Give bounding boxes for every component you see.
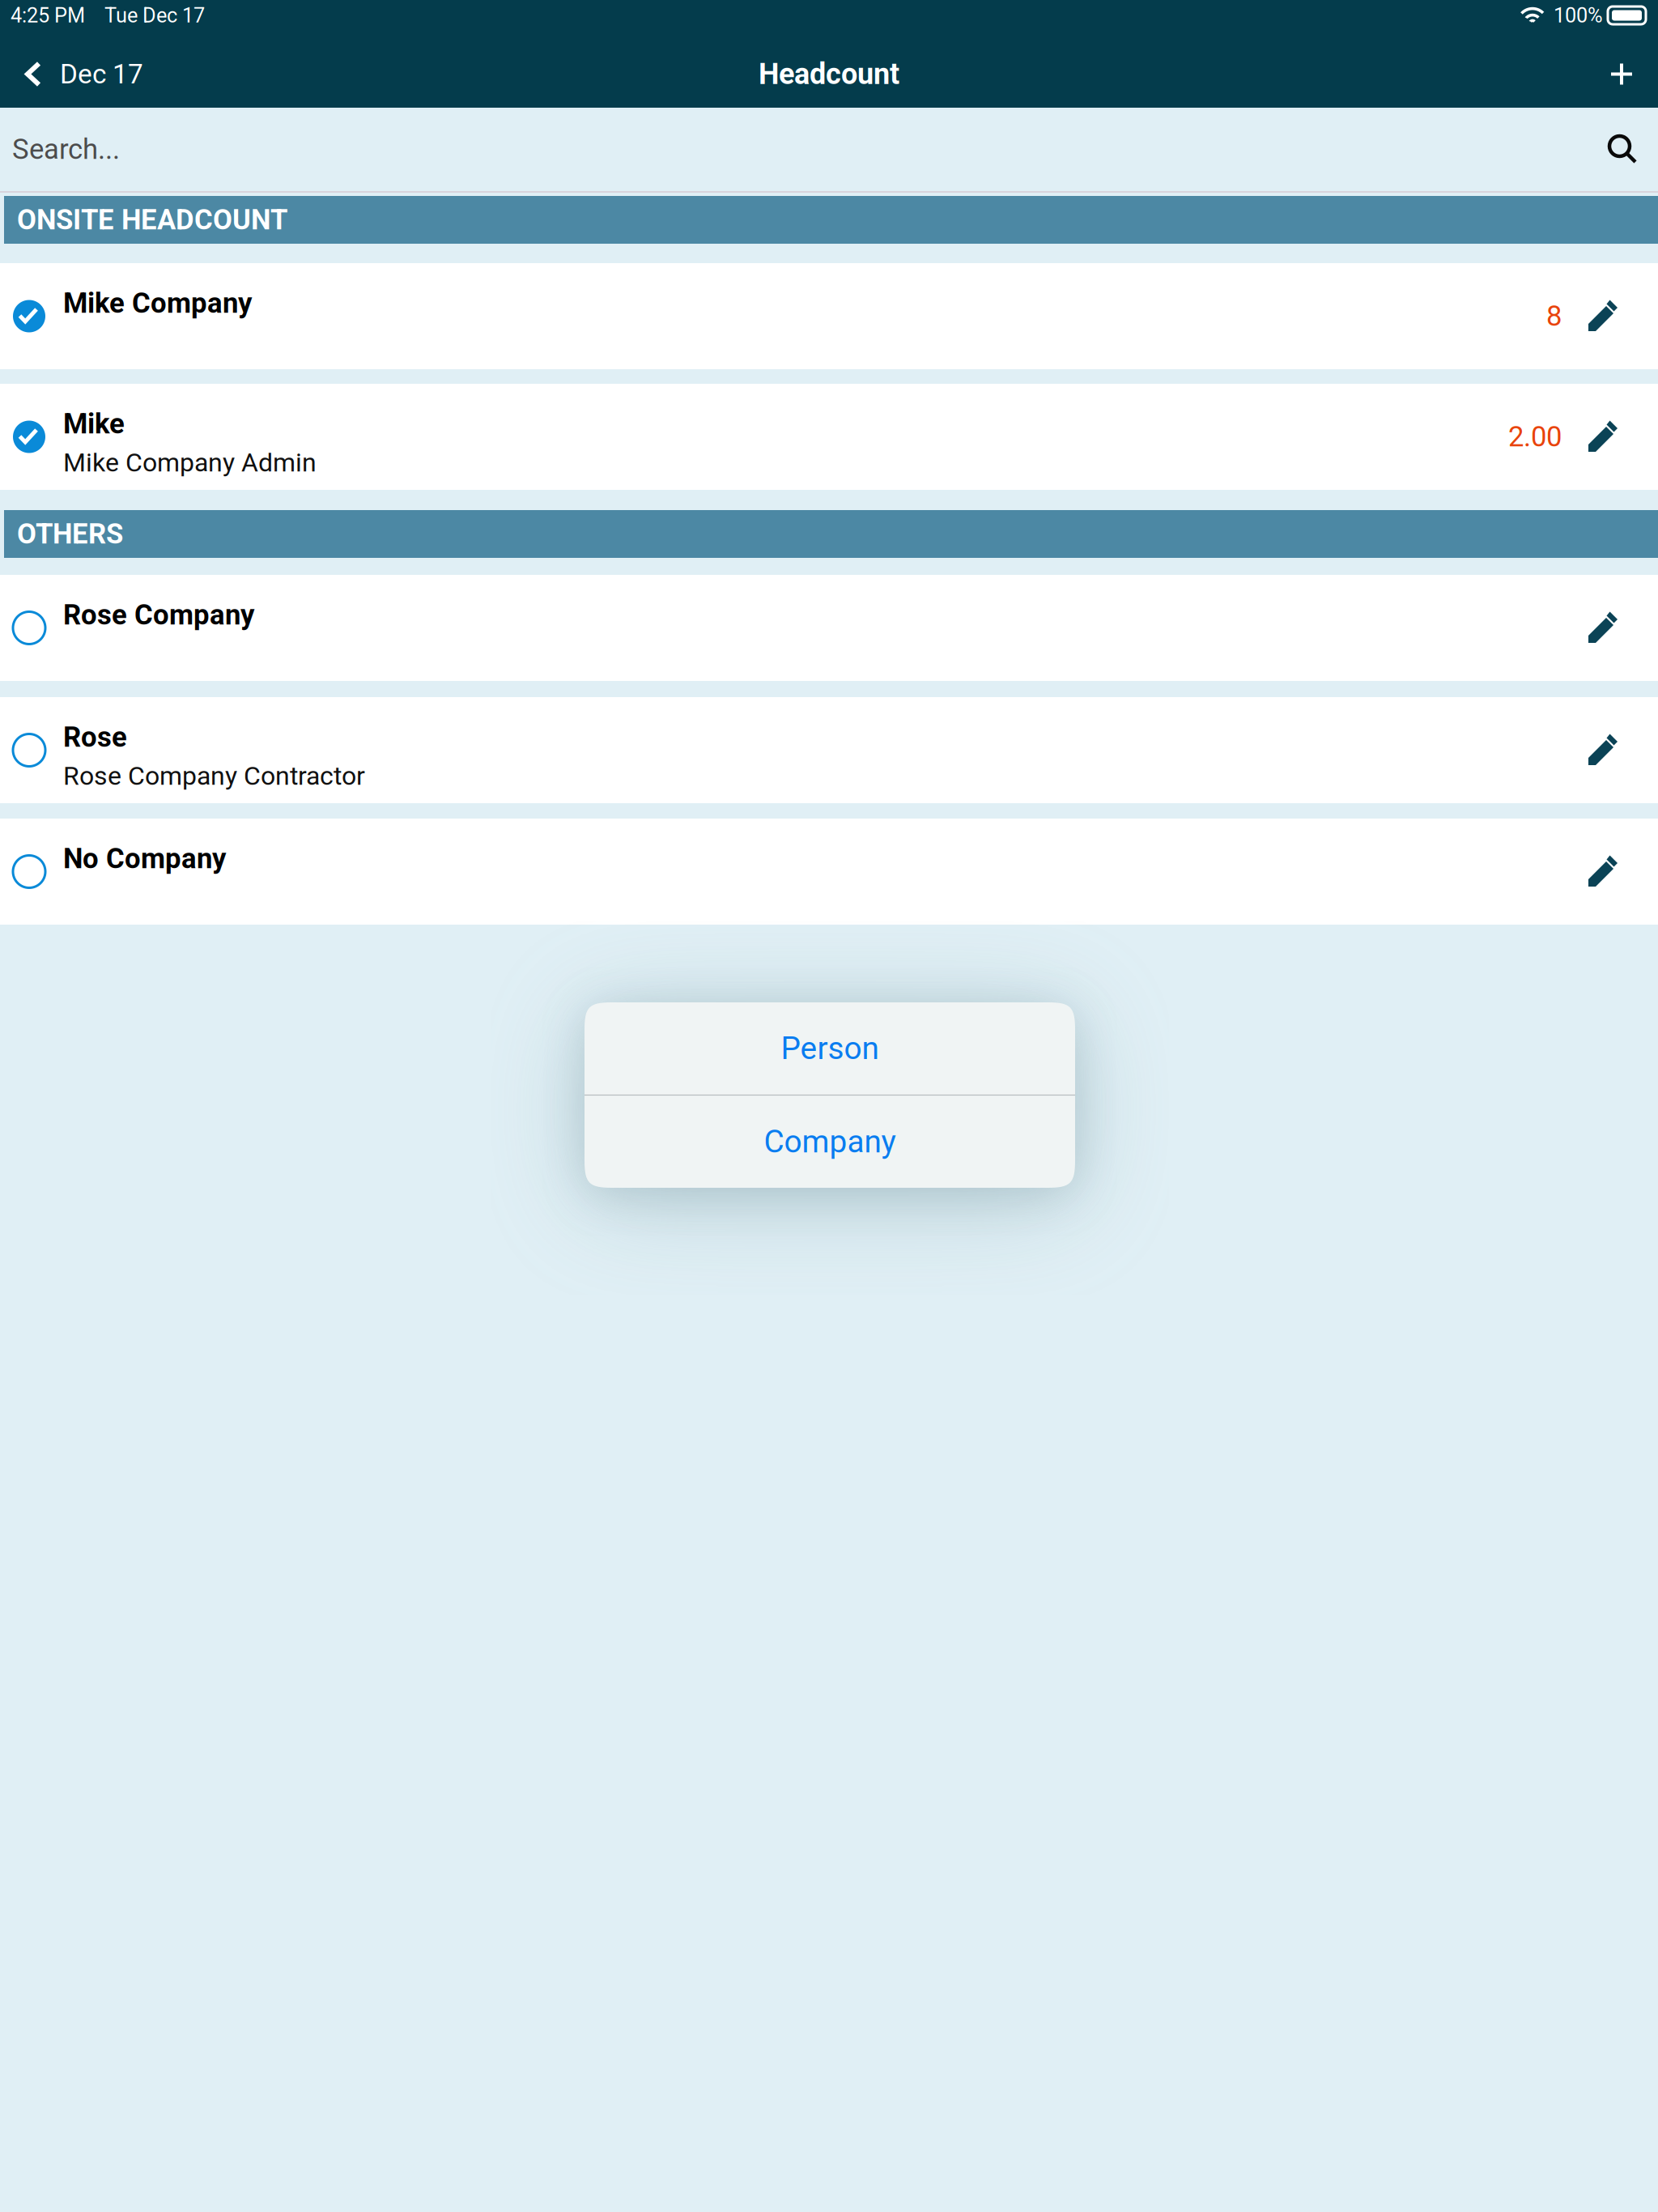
staticText: Tue Dec 17: [104, 3, 205, 27]
staticText: No Company: [63, 842, 226, 875]
staticText: Company: [764, 1123, 896, 1160]
staticText: Mike: [63, 407, 125, 440]
staticText: ONSITE HEADCOUNT: [17, 203, 287, 236]
staticText: Mike Company Admin: [63, 447, 317, 478]
button[interactable]: Rose Company: [0, 575, 1658, 681]
staticText: Rose Company: [63, 598, 254, 631]
button[interactable]: Person: [585, 1002, 1075, 1095]
staticText: 4:25 PM: [11, 3, 85, 27]
button[interactable]: Mike Company: [0, 263, 1658, 369]
button[interactable]: Add: [1592, 40, 1658, 108]
staticText: Person: [781, 1030, 879, 1067]
staticText: Rose Company Contractor: [63, 761, 365, 791]
staticText: Search...: [12, 133, 120, 166]
button[interactable]: Dec 17: [0, 40, 156, 108]
staticText: Headcount: [759, 57, 899, 91]
staticText: 100%: [1554, 3, 1603, 27]
staticText: Mike Company: [63, 287, 252, 319]
staticText: OTHERS: [17, 518, 123, 550]
button[interactable]: No Company: [0, 819, 1658, 925]
button[interactable]: Rose: [0, 697, 1658, 803]
staticText: Dec 17: [60, 58, 143, 90]
staticText: 8: [1546, 300, 1562, 333]
button[interactable]: Search...: [0, 108, 1658, 191]
button[interactable]: Company: [585, 1096, 1075, 1188]
staticText: Rose: [63, 721, 127, 753]
staticText: 2.00: [1508, 420, 1562, 453]
button[interactable]: Mike: [0, 384, 1658, 490]
